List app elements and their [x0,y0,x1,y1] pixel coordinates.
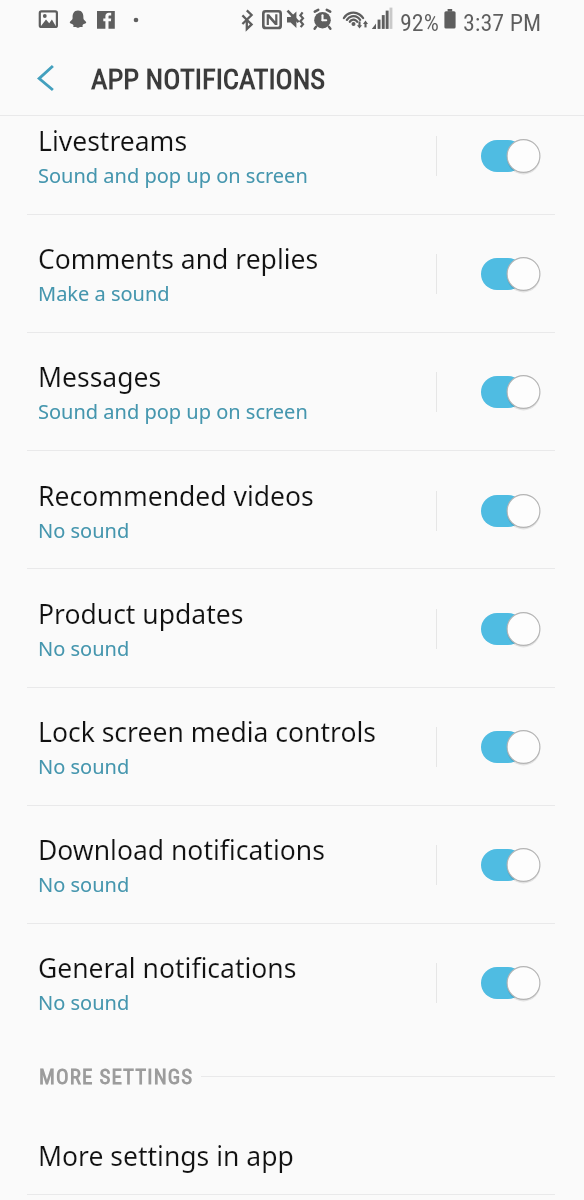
staticText: Lock screen media controls [38,714,376,750]
staticText: No sound [38,753,130,780]
button[interactable]: Livestreams [0,97,584,215]
button[interactable]: Download notifications [0,806,584,924]
button[interactable]: More settings in app [0,1115,584,1196]
staticText: No sound [38,989,130,1016]
staticText: General notifications [38,950,297,986]
button[interactable]: Comments and replies [0,215,584,333]
button[interactable]: Toggle General notifications [437,924,584,1042]
staticText: Livestreams [38,123,188,159]
staticText: No sound [38,871,130,898]
staticText: Make a sound [38,280,170,307]
button[interactable]: Toggle Recommended videos [437,452,584,570]
staticText: Sound and pop up on screen [38,398,308,425]
staticText: Download notifications [38,832,325,868]
button[interactable]: Recommended videos [0,452,584,570]
button[interactable]: Toggle Comments and replies [437,215,584,333]
staticText: Product updates [38,596,244,632]
button[interactable]: Toggle Download notifications [437,806,584,924]
button[interactable]: Lock screen media controls [0,688,584,806]
button[interactable]: Messages [0,333,584,451]
staticText: Recommended videos [38,478,314,514]
staticText: Comments and replies [38,241,319,277]
button[interactable]: Toggle Livestreams [437,97,584,215]
button[interactable]: Toggle Product updates [437,570,584,688]
button[interactable]: Toggle Messages [437,333,584,451]
staticText: APP NOTIFICATIONS [91,63,326,96]
staticText: 92% [400,9,439,37]
staticText: More settings in app [38,1138,294,1174]
staticText: Sound and pop up on screen [38,162,308,189]
staticText: 3:37 PM [463,9,542,37]
button[interactable]: General notifications [0,924,584,1042]
button[interactable]: Product updates [0,570,584,688]
button[interactable]: Navigate up [20,48,76,115]
staticText: Messages [38,359,162,395]
staticText: No sound [38,517,130,544]
staticText: No sound [38,635,130,662]
button[interactable]: Toggle Lock screen media controls [437,688,584,806]
staticText: MORE SETTINGS [39,1065,194,1090]
